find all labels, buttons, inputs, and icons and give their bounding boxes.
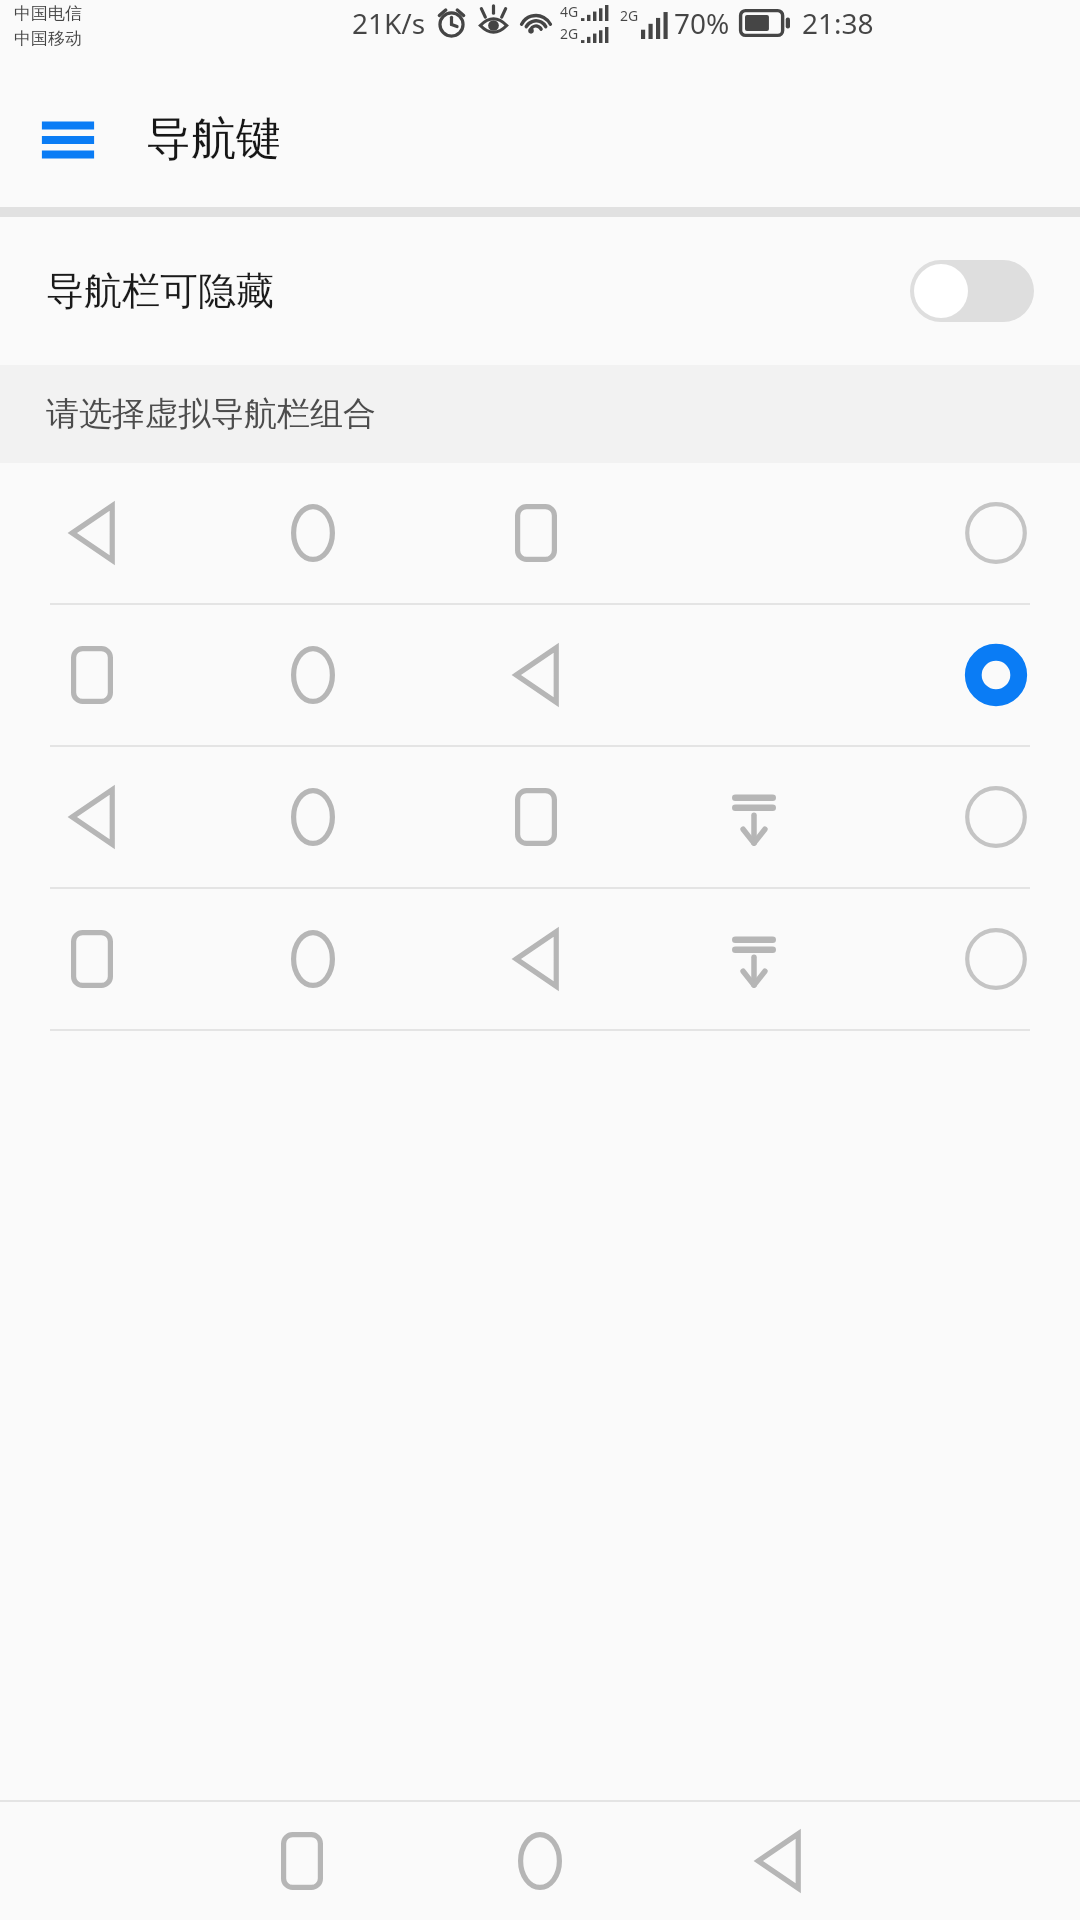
button[interactable]: Back bbox=[733, 1802, 823, 1920]
button[interactable]: Menu bbox=[32, 104, 104, 176]
staticText: 4G bbox=[560, 2, 579, 21]
staticText: 导航键 bbox=[146, 111, 281, 168]
button[interactable]: Navigation layout option 2 bbox=[0, 605, 1080, 745]
button[interactable]: 导航栏可隐藏 bbox=[0, 217, 1080, 365]
staticText: 21K/s bbox=[352, 4, 426, 42]
staticText: 2G bbox=[620, 6, 639, 25]
button[interactable]: Navigation layout option 1 bbox=[0, 463, 1080, 603]
staticText: 2G bbox=[560, 24, 579, 43]
button[interactable]: Hideable navigation bar toggle bbox=[910, 260, 1034, 322]
staticText: 70% bbox=[674, 4, 730, 42]
staticText: 导航栏可隐藏 bbox=[46, 267, 274, 315]
button[interactable]: Home bbox=[495, 1802, 585, 1920]
button[interactable]: Navigation layout option 4 bbox=[0, 889, 1080, 1029]
staticText: 请选择虚拟导航栏组合 bbox=[46, 393, 376, 435]
button[interactable]: Recents bbox=[257, 1802, 347, 1920]
staticText: 中国电信 bbox=[14, 3, 82, 24]
staticText: 中国移动 bbox=[14, 28, 82, 49]
button[interactable]: Navigation layout option 3 bbox=[0, 747, 1080, 887]
staticText: 21:38 bbox=[802, 4, 874, 42]
